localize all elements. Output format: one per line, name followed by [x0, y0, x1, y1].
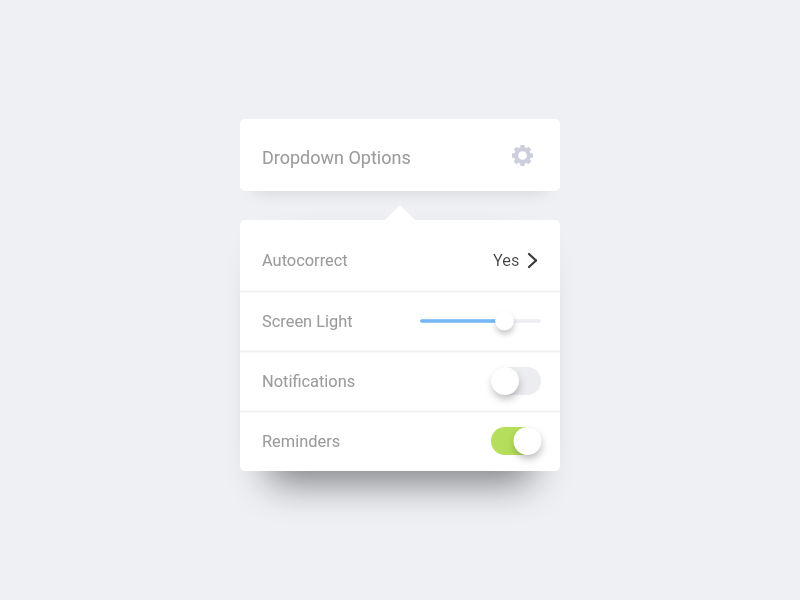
staticText: Reminders — [262, 432, 341, 451]
button[interactable]: Settings — [507, 140, 537, 170]
button[interactable]: Notifications off — [491, 363, 541, 399]
staticText: Dropdown Options — [262, 147, 411, 168]
button[interactable] — [420, 304, 541, 338]
staticText: Autocorrect — [262, 251, 348, 270]
staticText: Notifications — [262, 372, 356, 391]
button[interactable]: Reminders — [240, 411, 560, 471]
button[interactable]: Reminders on — [491, 423, 541, 459]
button[interactable]: Notifications — [240, 351, 560, 411]
button[interactable]: Dropdown Options — [240, 119, 560, 191]
staticText: Yes — [493, 251, 520, 270]
button[interactable]: Screen Light — [240, 291, 560, 351]
staticText: Screen Light — [262, 312, 353, 331]
button[interactable]: Autocorrect — [240, 220, 560, 291]
